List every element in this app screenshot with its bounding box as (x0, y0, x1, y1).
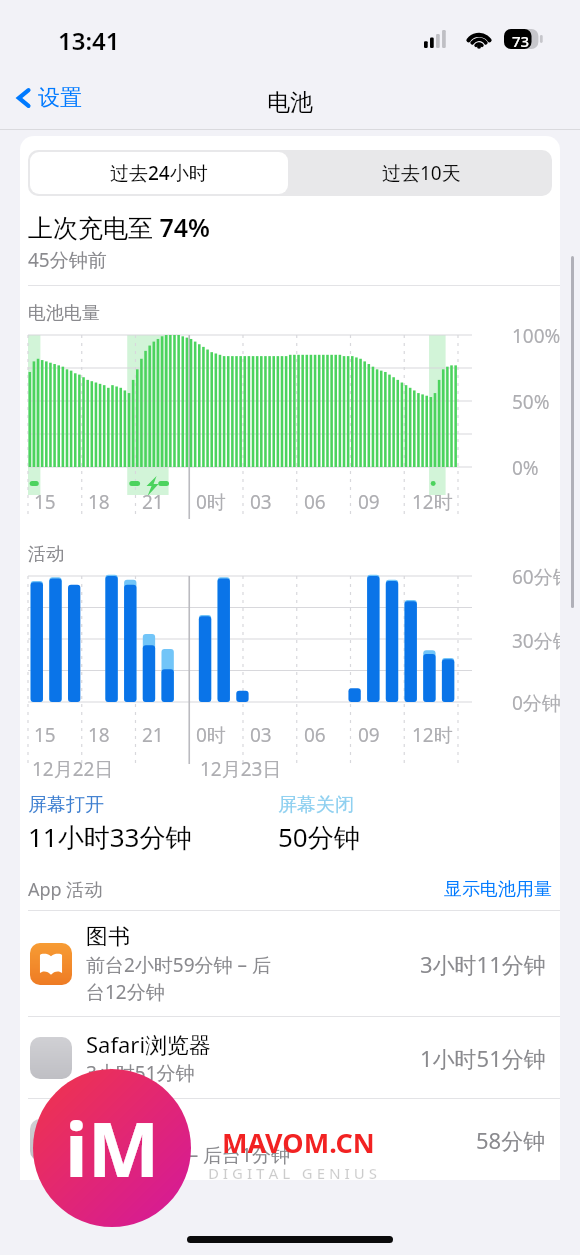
button[interactable]: 过去10天 (290, 150, 552, 196)
staticText: 活动 (28, 543, 64, 566)
staticText: 1小时51分钟 (420, 1043, 546, 1073)
button[interactable]: 显示电池用量 (444, 878, 552, 901)
staticText: 50分钟 (278, 819, 360, 855)
staticText: 图书 (86, 923, 130, 951)
button[interactable]: Safari浏览器 (20, 1017, 560, 1098)
staticText: 73 (508, 31, 533, 51)
staticText: D I G I T A L G E N I U S (208, 1163, 377, 1183)
button[interactable]: Stars (20, 1099, 560, 1180)
staticText: 15 (34, 722, 56, 748)
staticText: 前台2小时59分钟 – 后 台12分钟 (86, 952, 271, 1004)
staticText: 21 (142, 489, 164, 515)
staticText: 18 (88, 489, 110, 515)
staticText: 设置 (38, 84, 82, 112)
staticText: 屏幕打开 (28, 793, 104, 817)
staticText: 3小时11分钟 (420, 949, 546, 979)
staticText: App 活动 (28, 877, 103, 902)
staticText: 电池 (267, 88, 313, 117)
button[interactable]: 设置 (16, 84, 82, 112)
button[interactable]: 过去24小时 (30, 152, 288, 194)
staticText: Safari浏览器 (86, 1029, 212, 1059)
staticText: 0时 (196, 489, 226, 515)
staticText: MAVOM.CN (222, 1124, 375, 1161)
staticText: 过去24小时 (110, 160, 208, 186)
staticText: 45分钟前 (28, 247, 107, 273)
staticText: 12月22日 (32, 756, 114, 782)
staticText: 58分钟 (476, 1125, 546, 1155)
staticText: 21 (142, 722, 164, 748)
staticText: 3小时51分钟 (86, 1060, 195, 1086)
staticText: 12时 (412, 489, 453, 515)
staticText: 屏幕关闭 (278, 793, 354, 817)
staticText: 50% (512, 389, 550, 415)
button[interactable]: 图书 (20, 911, 560, 1016)
staticText: 显示电池用量 (444, 878, 552, 901)
staticText: 06 (304, 722, 326, 748)
staticText: 12月23日 (200, 756, 282, 782)
staticText: 09 (358, 489, 380, 515)
staticText: 100% (512, 323, 560, 349)
staticText: 前台57分钟 – 后台1分钟 (86, 1142, 290, 1168)
staticText: 06 (304, 489, 326, 515)
staticText: 15 (34, 489, 56, 515)
staticText: 过去10天 (382, 160, 461, 186)
staticText: 18 (88, 722, 110, 748)
staticText: 上次充电至 74% (28, 210, 210, 244)
staticText: 60分钟 (512, 564, 560, 590)
staticText: 30分钟 (512, 628, 560, 654)
staticText: 0% (512, 455, 539, 481)
staticText: 0时 (196, 722, 226, 748)
staticText: 12时 (412, 722, 453, 748)
staticText: 03 (250, 722, 272, 748)
staticText: 电池电量 (28, 302, 100, 325)
staticText: 09 (358, 722, 380, 748)
staticText: Stars (86, 1111, 138, 1141)
staticText: 03 (250, 489, 272, 515)
staticText: 13:41 (58, 24, 120, 57)
staticText: 0分钟 (512, 690, 560, 716)
staticText: iM (65, 1096, 160, 1200)
staticText: 11小时33分钟 (28, 819, 192, 855)
